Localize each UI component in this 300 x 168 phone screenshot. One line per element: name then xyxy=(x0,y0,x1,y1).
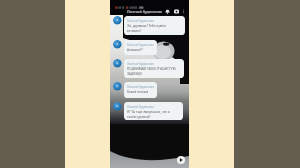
staticText: Личный будильник xyxy=(127,19,154,23)
button[interactable]: Profile photo xyxy=(113,59,122,68)
staticText: ПОДНИМАЙ СВОЮ ПУШИСТУЮ xyxy=(127,67,176,71)
staticText: Какой теплый xyxy=(127,90,149,94)
button[interactable]: Личный будильник xyxy=(124,40,157,55)
button[interactable]: Play xyxy=(177,156,185,164)
staticText: Личный будильник xyxy=(127,9,163,14)
staticText: ЗАДНИЦУ xyxy=(127,72,143,76)
staticText: Личный будильник xyxy=(127,105,154,109)
button[interactable]: More options xyxy=(182,9,186,14)
staticText: Эй, дружище! Тебе нужно xyxy=(127,24,166,28)
staticText: вставать! xyxy=(127,29,142,33)
staticText: такой суровый! xyxy=(127,115,151,119)
staticText: Личный будильник xyxy=(127,43,154,47)
button[interactable]: Profile photo xyxy=(113,82,122,91)
button[interactable]: Profile photo xyxy=(113,40,122,49)
staticText: Личный будильник xyxy=(127,62,154,66)
button[interactable]: Profile photo xyxy=(113,102,122,111)
button[interactable]: Profile photo xyxy=(113,16,122,25)
button[interactable]: Video call xyxy=(174,9,179,14)
button[interactable]: Личный будильник xyxy=(124,102,183,120)
staticText: Я? Ты еще жалуешься, что я xyxy=(127,110,170,114)
button[interactable]: Личный будильник xyxy=(124,59,184,78)
staticText: Личный будильник xyxy=(127,85,154,89)
staticText: Алиииса?? xyxy=(127,48,143,52)
button[interactable]: Личный будильник xyxy=(124,16,185,35)
button[interactable]: Личный будильник xyxy=(124,82,157,98)
button[interactable]: Mute notifications xyxy=(165,9,170,14)
